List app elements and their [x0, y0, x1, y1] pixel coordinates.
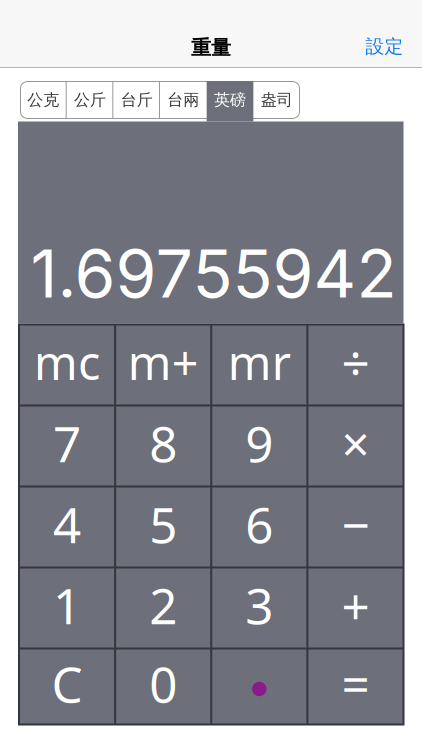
button[interactable]: m+: [116, 325, 210, 404]
staticText: 5: [149, 491, 177, 557]
button[interactable]: 公克: [20, 81, 67, 119]
button[interactable]: mc: [20, 325, 114, 404]
staticText: 7: [53, 410, 81, 476]
staticText: 8: [149, 410, 177, 476]
button[interactable]: 設定: [365, 35, 422, 67]
button[interactable]: C: [20, 649, 114, 723]
staticText: 公克: [27, 90, 59, 110]
button[interactable]: 台兩: [160, 81, 207, 119]
staticText: mc: [34, 331, 100, 393]
button[interactable]: −: [308, 487, 402, 566]
staticText: 3: [245, 572, 273, 638]
staticText: 1.69755942: [30, 234, 396, 313]
staticText: 公斤: [74, 90, 106, 110]
staticText: 台斤: [121, 90, 153, 110]
staticText: 盎司: [261, 90, 293, 110]
staticText: 6: [245, 491, 273, 557]
button[interactable]: 8: [116, 406, 210, 485]
staticText: ÷: [341, 329, 369, 395]
button[interactable]: 英磅: [207, 81, 253, 119]
staticText: −: [341, 491, 369, 557]
staticText: 1: [53, 572, 81, 638]
staticText: 重量: [191, 35, 231, 60]
button[interactable]: +: [308, 568, 402, 647]
staticText: 0: [149, 651, 177, 716]
button[interactable]: 3: [212, 568, 306, 647]
button[interactable]: 盎司: [253, 81, 300, 119]
staticText: 9: [245, 410, 273, 476]
staticText: mr: [228, 331, 291, 393]
button[interactable]: mr: [212, 325, 306, 404]
button[interactable]: 7: [20, 406, 114, 485]
button[interactable]: 5: [116, 487, 210, 566]
button[interactable]: 小數點: [212, 649, 306, 723]
staticText: 設定: [365, 35, 403, 58]
staticText: 台兩: [167, 90, 199, 110]
staticText: 2: [149, 572, 177, 638]
button[interactable]: 公斤: [67, 81, 113, 119]
staticText: =: [341, 651, 369, 716]
button[interactable]: 6: [212, 487, 306, 566]
button[interactable]: 4: [20, 487, 114, 566]
staticText: +: [341, 572, 369, 638]
button[interactable]: 1: [20, 568, 114, 647]
button[interactable]: 2: [116, 568, 210, 647]
button[interactable]: ×: [308, 406, 402, 485]
button[interactable]: 9: [212, 406, 306, 485]
staticText: m+: [128, 331, 199, 393]
button[interactable]: ÷: [308, 325, 402, 404]
staticText: C: [52, 651, 83, 716]
button[interactable]: 台斤: [113, 81, 160, 119]
button[interactable]: 0: [116, 649, 210, 723]
button[interactable]: =: [308, 649, 402, 723]
staticText: 4: [53, 491, 81, 557]
staticText: ×: [341, 410, 369, 476]
staticText: 英磅: [214, 90, 246, 110]
